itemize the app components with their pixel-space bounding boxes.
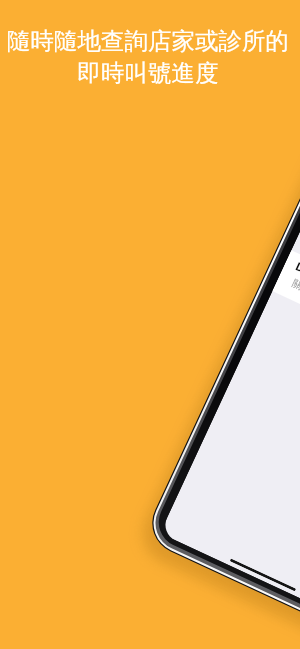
staticText: 隨時隨地查詢店家或診所的 即時叫號進度 bbox=[7, 26, 289, 88]
button[interactable]: Dr.陳小明耳鼻喉科 bbox=[272, 250, 300, 384]
staticText: 關心您的健康，歡迎光臨 bbox=[290, 276, 300, 335]
staticText: Dr.陳小明耳鼻喉科 bbox=[293, 258, 300, 313]
